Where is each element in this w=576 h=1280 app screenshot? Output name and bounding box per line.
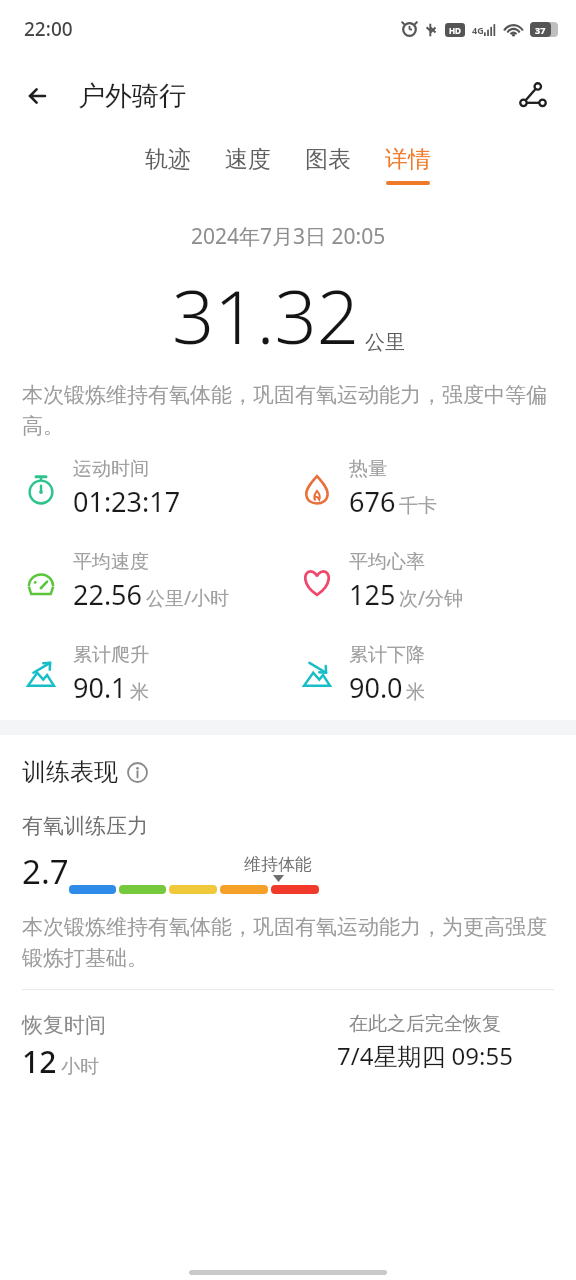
staticText: 小时 [61,1055,99,1079]
button[interactable]: 速度 [208,139,288,191]
staticText: 累计下降 [349,643,425,667]
staticText: 轨迹 [145,145,191,174]
staticText: 图表 [305,145,351,174]
staticText: 7/4星期四 09:55 [337,1039,513,1072]
staticText: 4G [472,24,484,36]
button[interactable]: 恢复时间 [22,1012,274,1082]
staticText: 90.1 [73,669,127,706]
staticText: 01:23:17 [73,483,181,520]
staticText: 详情 [385,145,431,174]
button[interactable]: Share [506,69,560,123]
button[interactable]: 累计下降 [298,643,576,706]
staticText: 累计爬升 [73,643,149,667]
staticText: 米 [130,680,149,704]
staticText: 公里 [365,330,405,355]
button[interactable]: 轨迹 [128,139,208,191]
staticText: 22.56 [73,576,143,613]
staticText: 125 [349,576,396,613]
staticText: 户外骑行 [78,79,186,113]
staticText: 2024年7月3日 20:05 [191,222,386,251]
staticText: 2.7 [22,849,69,894]
staticText: 恢复时间 [22,1012,106,1038]
staticText: 维持体能 [244,854,312,875]
button[interactable]: 平均速度 [22,550,288,613]
staticText: 速度 [225,145,271,174]
staticText: 米 [406,680,425,704]
button[interactable]: 详情 [368,139,448,191]
staticText: 公里/小时 [146,585,230,611]
staticText: 千卡 [399,494,437,518]
staticText: 90.0 [349,669,403,706]
staticText: 22:00 [24,16,73,42]
staticText: 平均速度 [73,550,149,574]
staticText: 37 [535,24,546,36]
staticText: 31.32 [172,265,360,366]
staticText: HD [449,25,461,36]
staticText: 训练表现 [22,757,118,787]
button[interactable]: 训练表现 [22,757,148,787]
staticText: 有氧训练压力 [22,813,148,839]
staticText: 次/分钟 [399,585,464,611]
staticText: 12 [22,1041,57,1082]
button[interactable]: Back [14,73,64,119]
staticText: 平均心率 [349,550,425,574]
other: Info [127,762,148,783]
staticText: 热量 [349,457,387,481]
button[interactable]: 累计爬升 [22,643,288,706]
button[interactable]: 图表 [288,139,368,191]
staticText: 运动时间 [73,457,149,481]
staticText: 在此之后完全恢复 [349,1012,501,1036]
button[interactable]: 运动时间 [22,457,288,520]
button[interactable]: 热量 [298,457,576,520]
button[interactable]: 平均心率 [298,550,576,613]
staticText: 本次锻炼维持有氧体能，巩固有氧运动能力，强度中等偏高。 [22,382,554,439]
staticText: 本次锻炼维持有氧体能，巩固有氧运动能力，为更高强度锻炼打基础。 [22,914,554,971]
staticText: 676 [349,483,396,520]
